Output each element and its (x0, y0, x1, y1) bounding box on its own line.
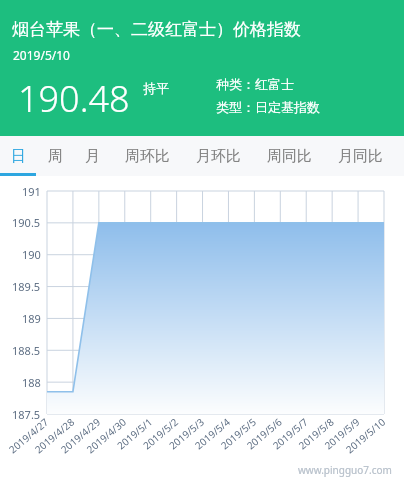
button[interactable]: 周 (37, 136, 73, 176)
staticText: www.pingguo7.com (298, 463, 392, 477)
staticText: 烟台苹果（一、二级红富士）价格指数 (12, 19, 301, 40)
button[interactable]: 月环比 (187, 136, 249, 176)
staticText: 周环比 (125, 147, 170, 166)
button[interactable]: 日 (0, 136, 36, 176)
staticText: 月 (85, 147, 100, 166)
button[interactable]: 月 (74, 136, 110, 176)
staticText: 持平 (143, 80, 169, 96)
staticText: 月环比 (196, 147, 241, 166)
button[interactable]: 月同比 (329, 136, 391, 176)
staticText: 2019/5/10 (13, 47, 70, 63)
staticText: 月同比 (338, 147, 383, 166)
staticText: 周同比 (267, 147, 312, 166)
staticText: 周 (48, 147, 63, 166)
button[interactable]: 周环比 (116, 136, 178, 176)
staticText: 190.48 (18, 74, 130, 123)
staticText: 种类：红富士 (216, 76, 294, 92)
staticText: 日 (11, 147, 26, 166)
button[interactable]: 周同比 (258, 136, 320, 176)
staticText: 类型：日定基指数 (216, 99, 320, 115)
